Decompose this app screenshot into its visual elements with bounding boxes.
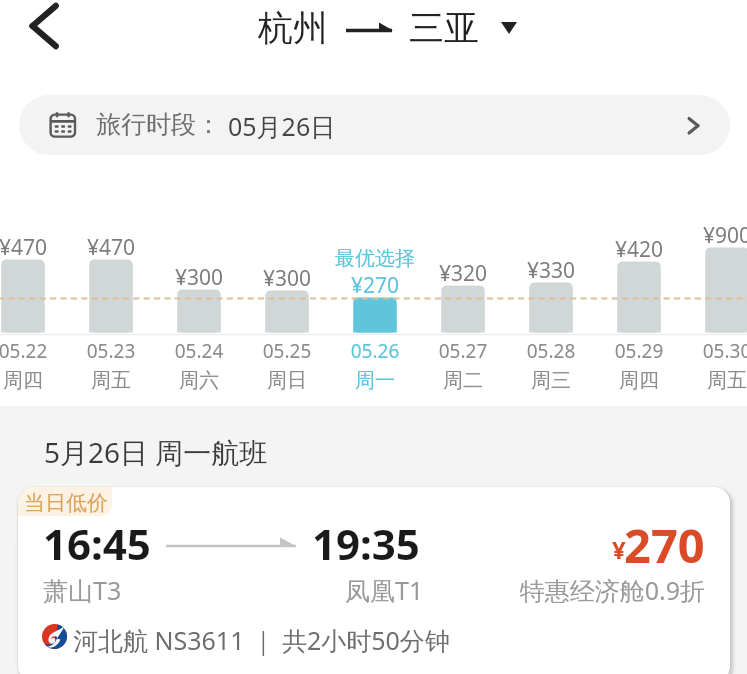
staticText: ¥270	[315, 271, 435, 300]
staticText: 周六	[139, 368, 259, 393]
staticText: ¥900	[667, 221, 747, 250]
button[interactable]: 杭州	[258, 6, 517, 50]
staticText: ¥470	[51, 233, 171, 262]
staticText: 05.25	[227, 338, 347, 364]
staticText: 凤凰T1	[345, 573, 424, 607]
staticText: 05.24	[139, 338, 259, 364]
staticText: 萧山T3	[43, 573, 122, 607]
staticText: 270	[624, 513, 705, 577]
staticText: 周五	[667, 368, 747, 393]
staticText: 05月26日	[228, 109, 336, 143]
staticText: ¥320	[403, 259, 523, 288]
staticText: ¥470	[0, 233, 83, 262]
staticText: 05.26	[315, 338, 435, 364]
staticText: 05.27	[403, 338, 523, 364]
staticText: 周五	[51, 368, 171, 393]
button[interactable]: 当日低价	[18, 487, 730, 674]
staticText: 周四	[579, 368, 699, 393]
staticText: 05.28	[491, 338, 611, 364]
staticText: 特惠经济舱0.9折	[448, 573, 705, 607]
button[interactable]: 旅行时段：	[19, 95, 730, 155]
staticText: 05.23	[51, 338, 171, 364]
staticText: 05.22	[0, 338, 83, 364]
staticText: 5月26日 周一航班	[44, 433, 268, 471]
staticText: 05.30	[667, 338, 747, 364]
staticText: ¥420	[579, 235, 699, 264]
staticText: 19:35	[312, 515, 420, 572]
staticText: 05.29	[579, 338, 699, 364]
staticText: 最优选择	[315, 246, 435, 271]
staticText: 周三	[491, 368, 611, 393]
staticText: ¥330	[491, 256, 611, 285]
staticText: 当日低价	[24, 490, 108, 516]
staticText: 16:45	[43, 515, 151, 572]
staticText: 周二	[403, 368, 523, 393]
staticText: 三亚	[409, 6, 479, 50]
staticText: 旅行时段：	[96, 109, 221, 140]
staticText: ¥	[612, 533, 626, 566]
button[interactable]: Back	[21, 3, 67, 49]
staticText: 杭州	[258, 6, 328, 50]
staticText: ¥300	[139, 263, 259, 292]
staticText: 周四	[0, 368, 83, 393]
staticText: ¥300	[227, 264, 347, 293]
staticText: 周日	[227, 368, 347, 393]
staticText: 周一	[315, 368, 435, 393]
staticText: 河北航 NS3611 ｜ 共2小时50分钟	[73, 623, 450, 657]
